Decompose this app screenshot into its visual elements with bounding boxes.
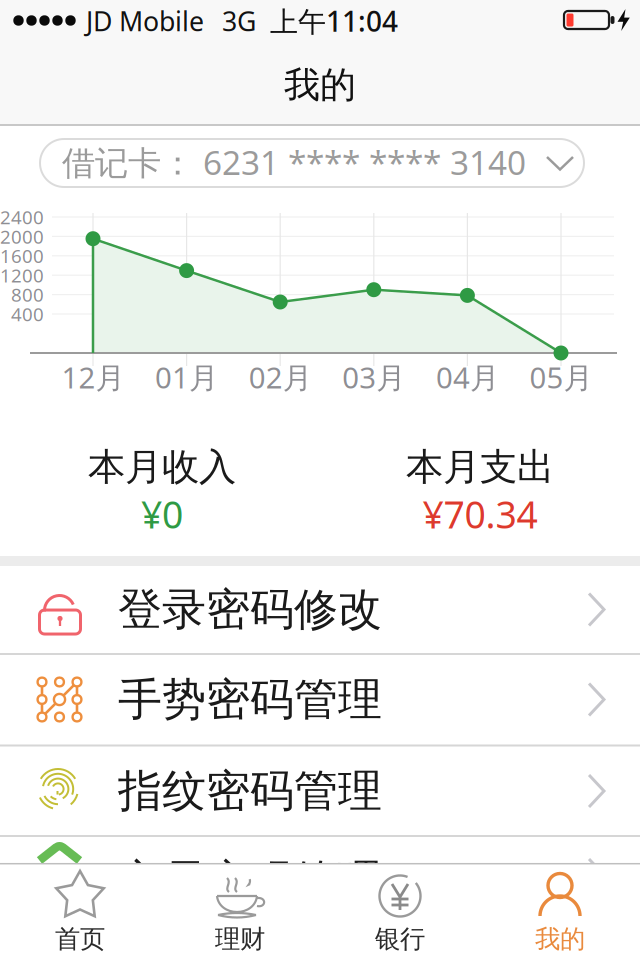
- staticText: 本月支出: [406, 444, 554, 490]
- button[interactable]: 交易密码管理: [0, 837, 640, 925]
- staticText: 登录密码修改: [118, 582, 382, 636]
- staticText: 手势密码管理: [118, 672, 382, 726]
- staticText: 03月: [342, 357, 405, 396]
- staticText: 2400: [0, 205, 44, 229]
- staticText: 本月收入: [88, 444, 236, 490]
- staticText: 我的: [284, 63, 356, 107]
- staticText: 我的: [535, 923, 585, 954]
- staticText: 3G: [222, 3, 256, 39]
- staticText: 指纹密码管理: [118, 764, 382, 818]
- staticText: 银行: [375, 923, 425, 954]
- staticText: 04月: [436, 357, 499, 396]
- staticText: 理财: [215, 923, 265, 954]
- button[interactable]: 首页: [0, 864, 160, 960]
- button[interactable]: 手势密码管理: [0, 655, 640, 743]
- staticText: JD Mobile: [86, 3, 204, 39]
- staticText: 1600: [0, 243, 44, 268]
- staticText: 05月: [529, 357, 592, 396]
- staticText: 400: [11, 302, 44, 326]
- staticText: 交易密码管理: [118, 854, 382, 908]
- staticText: 02月: [249, 357, 312, 396]
- button[interactable]: 登录密码修改: [0, 565, 640, 653]
- staticText: 2000: [0, 224, 44, 249]
- staticText: 首页: [55, 923, 105, 954]
- staticText: 上午11:04: [270, 2, 398, 40]
- staticText: 12月: [61, 357, 124, 396]
- button[interactable]: 银行: [320, 864, 480, 960]
- button[interactable]: 指纹密码管理: [0, 747, 640, 835]
- staticText: 1200: [0, 263, 44, 288]
- staticText: 01月: [155, 357, 218, 396]
- staticText: 借记卡： 6231 **** **** 3140: [62, 140, 526, 184]
- button[interactable]: 理财: [160, 864, 320, 960]
- staticText: ¥70.34: [422, 489, 537, 539]
- button[interactable]: 我的: [480, 864, 640, 960]
- staticText: ¥0: [141, 489, 183, 539]
- staticText: 800: [11, 282, 44, 307]
- button[interactable]: 借记卡： 6231 **** **** 3140: [40, 139, 584, 187]
